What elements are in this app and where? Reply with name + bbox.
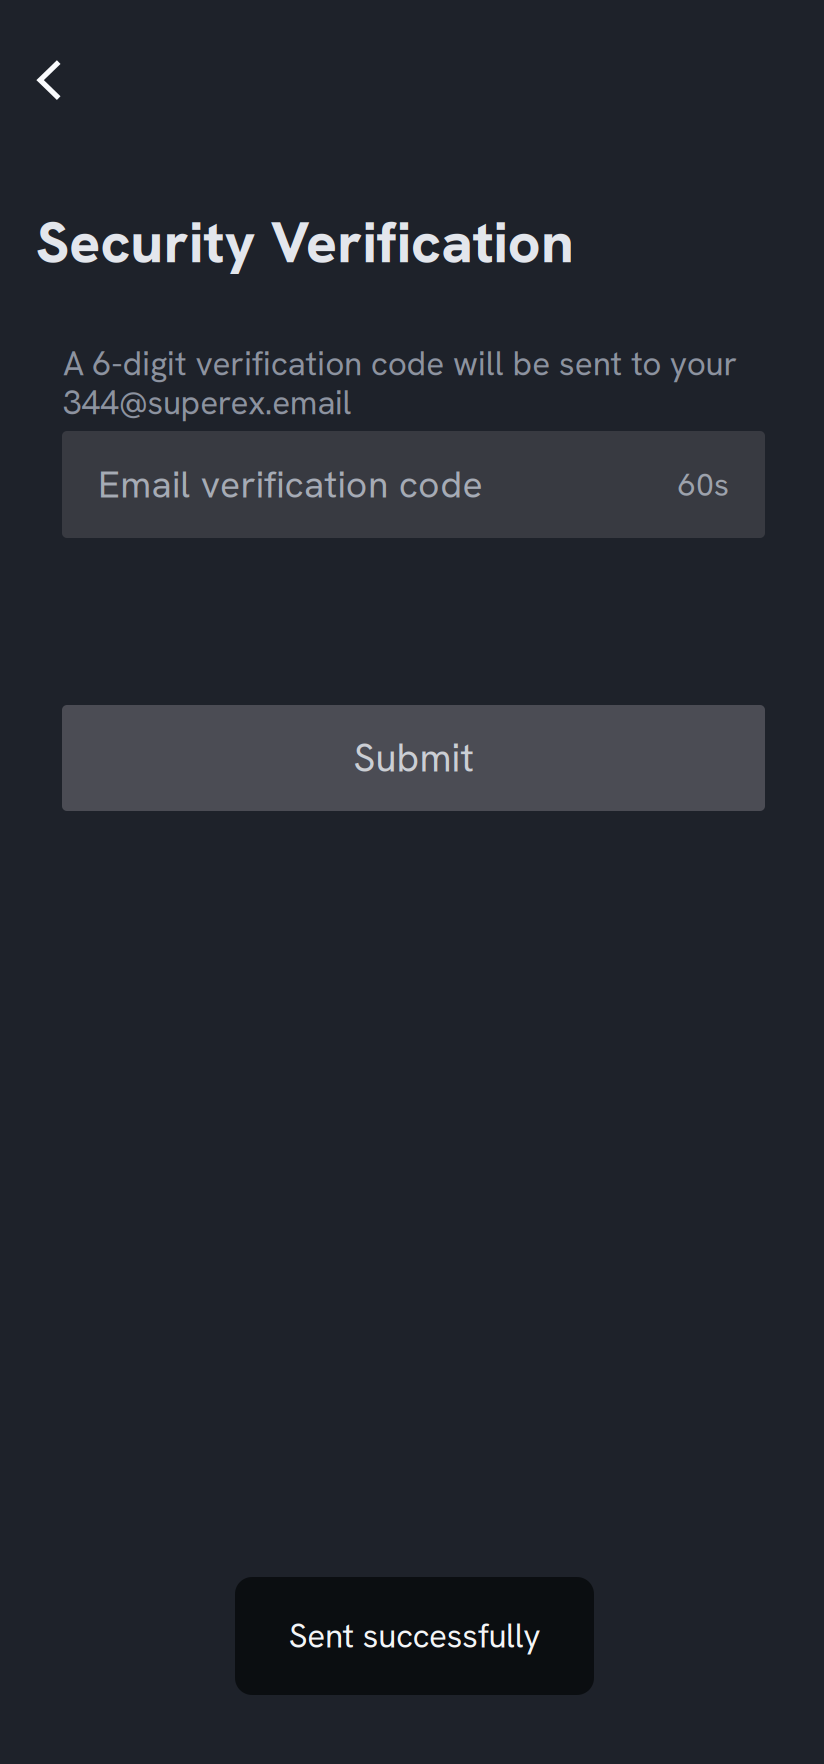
staticText: A 6-digit verification code will be sent… [63,342,737,385]
staticText: 60s [678,464,729,505]
staticText: Email verification code [98,460,483,509]
staticText: Submit [353,733,473,783]
button[interactable]: Submit [62,705,765,811]
staticText: Security Verification [36,205,574,280]
button[interactable]: Back [27,49,71,111]
button[interactable]: 60s [678,464,729,505]
staticText: Sent successfully [289,1614,540,1658]
staticText: 344@superex.email [63,381,352,424]
